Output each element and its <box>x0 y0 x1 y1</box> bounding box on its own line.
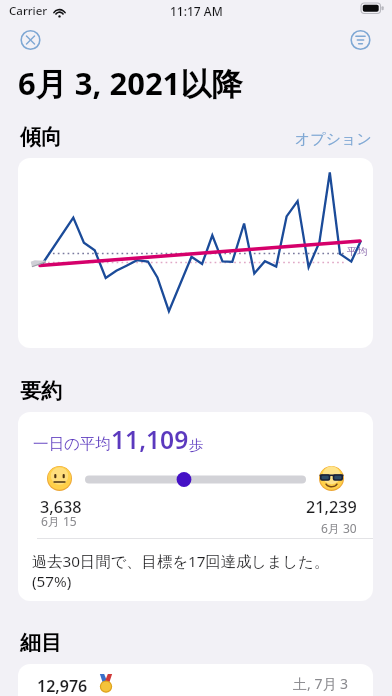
staticText: 過去30日間で、目標を17回達成しました。 (57%) <box>32 551 330 592</box>
staticText: 傾向 <box>20 124 62 150</box>
staticText: 6月 3, 2021以降 <box>18 62 243 104</box>
button[interactable]: オプション <box>293 128 374 151</box>
button[interactable]: 平均 <box>18 158 373 348</box>
staticText: 12,976 <box>37 675 88 696</box>
button[interactable]: 12,976 <box>18 664 373 696</box>
staticText: 21,239 <box>306 496 357 518</box>
button[interactable]: Close <box>17 26 44 53</box>
staticText: 土, 7月 3 <box>293 674 349 693</box>
staticText: Carrier <box>9 3 48 19</box>
button[interactable]: Filter <box>347 26 374 53</box>
staticText: 6月 30 <box>321 520 357 536</box>
staticText: 3,638 <box>40 496 82 518</box>
staticText: 6月 15 <box>41 513 77 529</box>
staticText: オプション <box>295 130 372 149</box>
staticText: 要約 <box>20 378 62 404</box>
staticText: 11:17 AM <box>170 3 223 19</box>
staticText: 平均 <box>347 245 367 258</box>
staticText: 歩 <box>189 436 204 454</box>
staticText: 11,109 <box>111 423 189 457</box>
staticText: 一日の平均 <box>33 434 111 454</box>
staticText: 細目 <box>20 630 62 656</box>
